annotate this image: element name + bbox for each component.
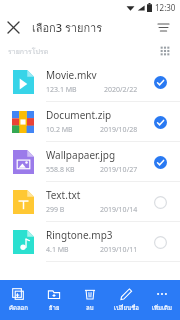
- button[interactable]: Selected: [150, 152, 170, 172]
- staticText: 2019/10/27: [100, 165, 138, 175]
- staticText: คัดลอก: [9, 303, 28, 313]
- staticText: ลบ: [86, 303, 94, 313]
- staticText: เปลี่ยนชื่อ: [114, 303, 139, 313]
- button[interactable]: Text.txt: [0, 182, 180, 222]
- staticText: 2019/10/11: [100, 245, 138, 255]
- button[interactable]: Ringtone.mp3: [0, 222, 180, 262]
- staticText: 2020/2/22: [104, 85, 138, 95]
- button[interactable]: เปลี่ยนชื่อ: [108, 280, 144, 320]
- button[interactable]: คัดลอก: [0, 280, 36, 320]
- button[interactable]: Document.zip: [0, 102, 180, 142]
- staticText: 2019/10/28: [100, 125, 138, 135]
- staticText: Ringtone.mp3: [46, 228, 113, 242]
- staticText: Wallpapaer.jpg: [46, 148, 116, 162]
- staticText: 123.1 MB: [46, 85, 77, 95]
- button[interactable]: Movie.mkv: [0, 62, 180, 102]
- staticText: 558.8 KB: [46, 165, 75, 175]
- button[interactable]: Wallpapaer.jpg: [0, 142, 180, 182]
- staticText: Document.zip: [46, 108, 112, 122]
- button[interactable]: Not selected: [150, 232, 170, 252]
- button[interactable]: ลบ: [72, 280, 108, 320]
- staticText: เลือก3 รายการ: [32, 19, 103, 36]
- staticText: รายการโปรด: [8, 46, 49, 57]
- button[interactable]: Sort: [150, 14, 176, 40]
- button[interactable]: เพิ่มเติม: [144, 280, 180, 320]
- staticText: Text.txt: [46, 188, 81, 202]
- staticText: ย้าย: [49, 303, 60, 313]
- staticText: Movie.mkv: [46, 68, 97, 82]
- staticText: 4.1 MB: [46, 245, 69, 255]
- button[interactable]: Close: [0, 14, 26, 40]
- staticText: 299 B: [46, 205, 65, 215]
- staticText: 10.2 MB: [46, 125, 73, 135]
- button[interactable]: Selected: [150, 72, 170, 92]
- staticText: 2019/10/14: [100, 205, 138, 215]
- button[interactable]: ย้าย: [36, 280, 72, 320]
- staticText: 12:30: [155, 2, 176, 13]
- button[interactable]: Not selected: [150, 192, 170, 212]
- staticText: เพิ่มเติม: [152, 303, 172, 313]
- button[interactable]: Selected: [150, 112, 170, 132]
- button[interactable]: Grid view: [154, 40, 176, 62]
